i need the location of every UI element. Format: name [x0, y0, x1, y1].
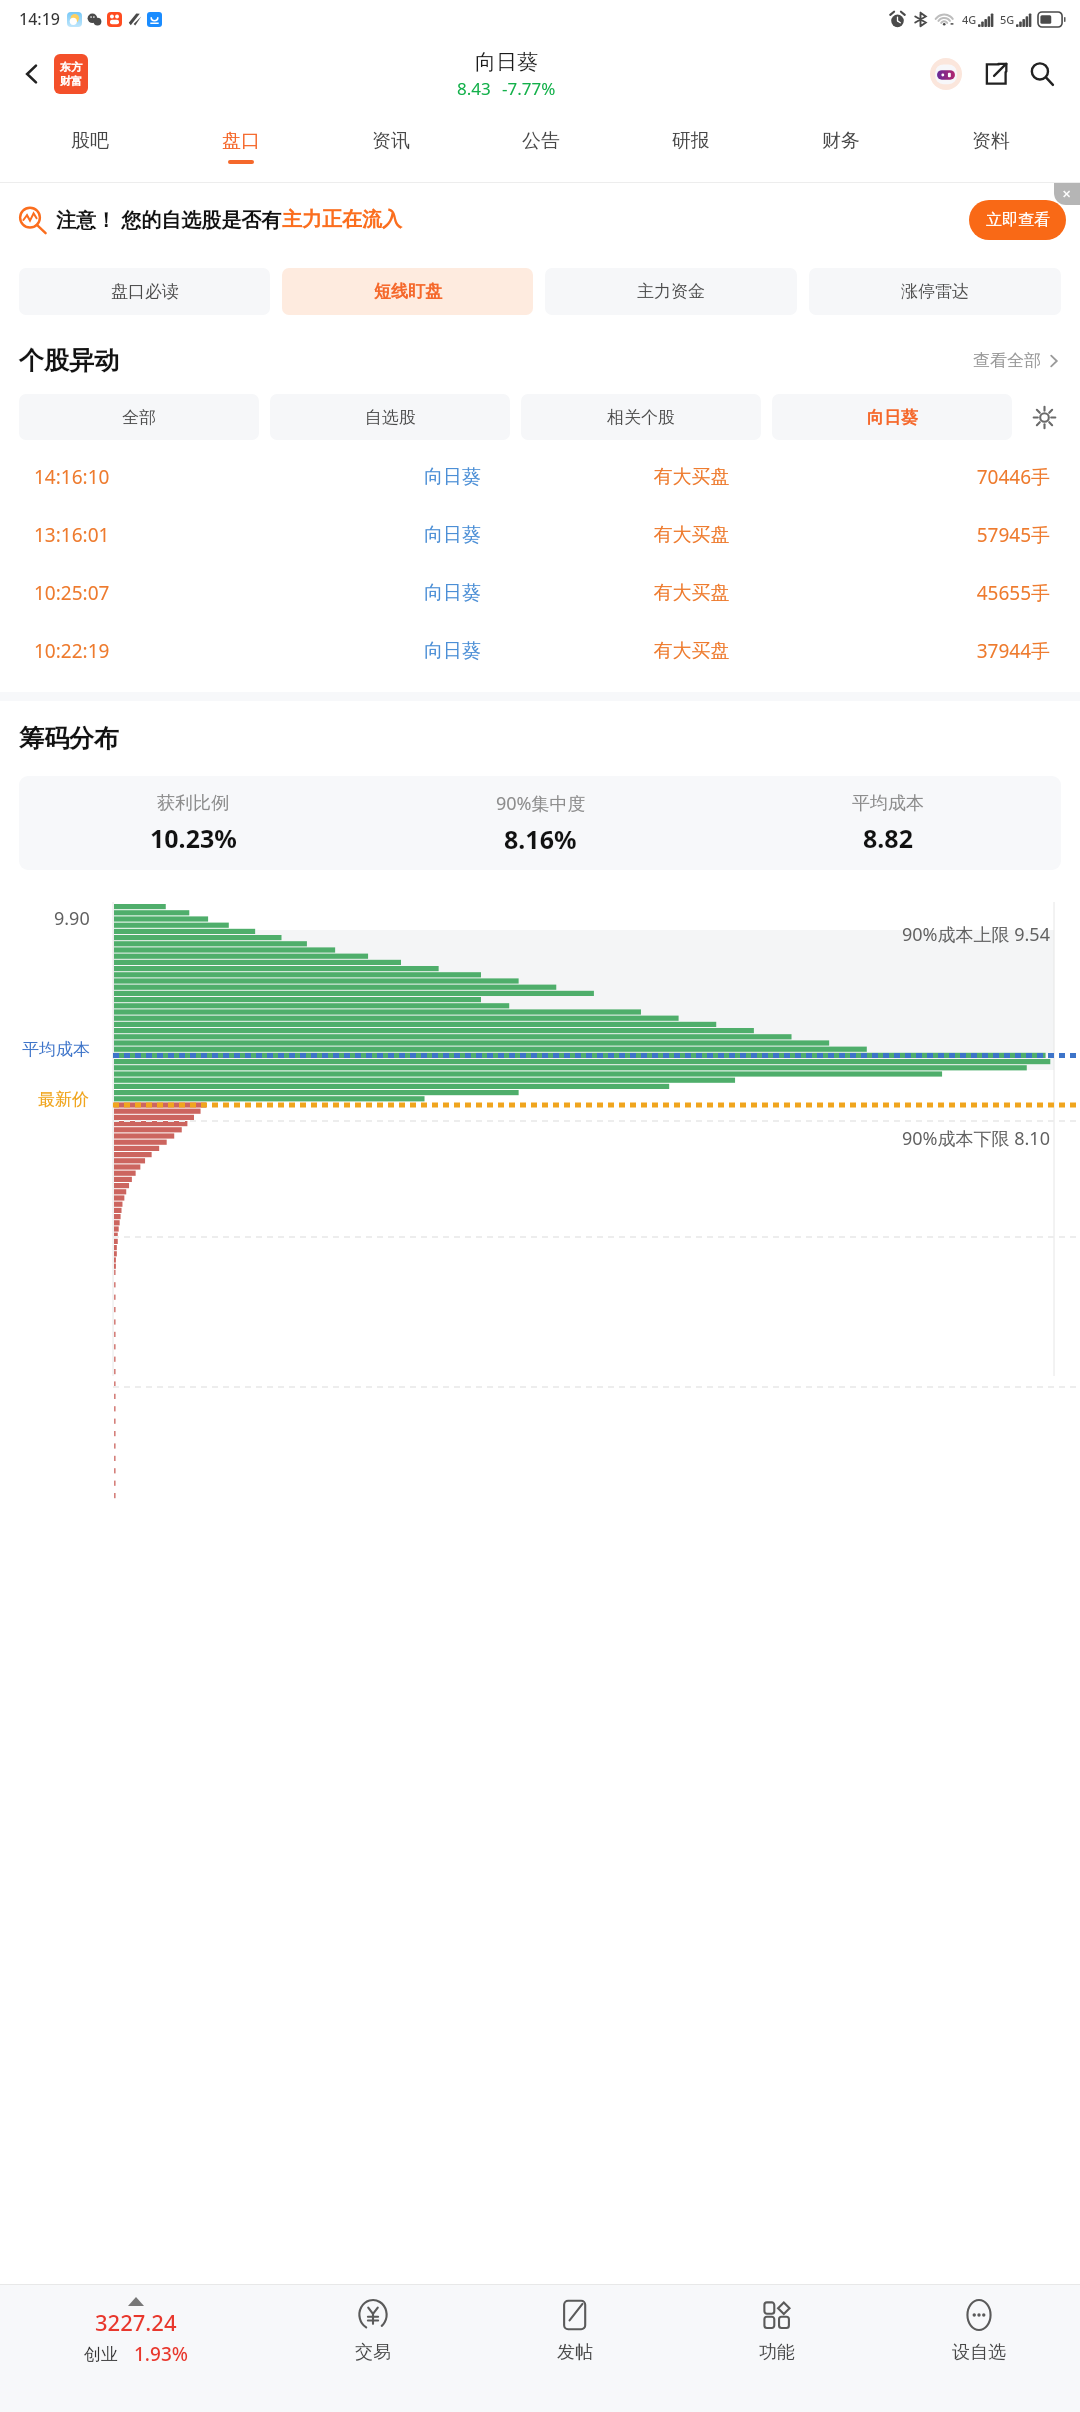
staticText: 有大买盘 — [572, 639, 811, 663]
staticText: 90%成本上限 9.54 — [902, 922, 1050, 947]
staticText: 筹码分布 — [19, 723, 119, 754]
staticText: 70446手 — [811, 464, 1050, 490]
staticText: 短线盯盘 — [374, 281, 442, 302]
button[interactable]: 盘口 — [165, 110, 316, 182]
button[interactable]: 盘口必读 — [19, 268, 270, 315]
staticText: 向日葵 — [333, 581, 572, 605]
staticText: 财富 — [60, 74, 82, 88]
staticText: 有大买盘 — [572, 465, 811, 489]
staticText: 45655手 — [811, 580, 1050, 606]
staticText: 相关个股 — [607, 407, 675, 428]
staticText: 有大买盘 — [572, 523, 811, 547]
staticText: 10:25:07 — [34, 580, 333, 606]
button[interactable]: 返回 — [12, 54, 52, 94]
button[interactable]: 向日葵 — [457, 49, 556, 100]
staticText: 3227.24 — [95, 2307, 177, 2337]
button[interactable]: 研报 — [616, 110, 766, 182]
staticText: 交易 — [355, 2341, 391, 2364]
button[interactable]: 短线盯盘 — [282, 268, 533, 315]
staticText: -7.77% — [502, 77, 556, 100]
button[interactable]: 发帖 — [474, 2285, 676, 2412]
staticText: 功能 — [759, 2341, 795, 2364]
staticText: 57945手 — [811, 522, 1050, 548]
button[interactable]: 3227.24 — [0, 2285, 272, 2412]
button[interactable]: 向日葵 — [772, 394, 1012, 440]
button[interactable]: 13:16:01 — [34, 506, 1050, 564]
staticText: 4G — [962, 12, 977, 27]
staticText: 平均成本 — [22, 1039, 90, 1060]
button[interactable]: 获利比例 — [19, 776, 1061, 870]
staticText: 向日葵 — [867, 407, 918, 428]
button[interactable]: 设置 — [1023, 396, 1065, 438]
staticText: 10.23% — [150, 821, 237, 855]
staticText: 有大买盘 — [572, 581, 811, 605]
staticText: 设自选 — [952, 2341, 1006, 2364]
button[interactable]: 10:25:07 — [34, 564, 1050, 622]
staticText: 平均成本 — [852, 792, 924, 815]
staticText: 全部 — [122, 407, 156, 428]
staticText: 注意！ 您的自选股是否有 — [56, 206, 282, 233]
staticText: 14:16:10 — [34, 464, 333, 490]
staticText: 最新价 — [38, 1089, 89, 1110]
button[interactable]: 关闭 — [1054, 183, 1080, 205]
staticText: 东方 — [60, 60, 82, 74]
staticText: 涨停雷达 — [901, 281, 969, 302]
staticText: 公告 — [522, 129, 560, 153]
button[interactable]: 股吧 — [14, 110, 165, 182]
button[interactable]: 搜索 — [1022, 54, 1062, 94]
staticText: 37944手 — [811, 638, 1050, 664]
staticText: ✕ — [1062, 188, 1072, 201]
staticText: 13:16:01 — [34, 522, 333, 548]
button[interactable]: 分享 — [976, 54, 1016, 94]
staticText: 14:19 — [19, 8, 60, 30]
staticText: 向日葵 — [475, 49, 538, 75]
button[interactable]: 查看全部 — [973, 350, 1061, 371]
staticText: 资讯 — [372, 129, 410, 153]
staticText: 主力正在流入 — [282, 207, 402, 232]
staticText: 获利比例 — [157, 792, 229, 815]
button[interactable]: 10:22:19 — [34, 622, 1050, 680]
button[interactable]: 东方财富 — [54, 54, 88, 94]
button[interactable]: 全部 — [19, 394, 259, 440]
button[interactable]: 设自选 — [878, 2285, 1080, 2412]
staticText: 向日葵 — [333, 523, 572, 547]
staticText: 盘口 — [222, 129, 260, 153]
staticText: 8.16% — [504, 822, 577, 856]
staticText: 8.43 — [457, 77, 491, 100]
button[interactable]: 14:16:10 — [34, 448, 1050, 506]
button[interactable]: AI助手 — [926, 54, 966, 94]
staticText: 立即查看 — [986, 210, 1050, 230]
staticText: 9.90 — [54, 906, 90, 931]
staticText: 90%集中度 — [496, 791, 586, 816]
button[interactable]: 公告 — [466, 110, 616, 182]
button[interactable]: 资料 — [916, 110, 1066, 182]
button[interactable]: 主力资金 — [545, 268, 797, 315]
staticText: 8.82 — [863, 821, 913, 855]
staticText: 个股异动 — [19, 345, 119, 376]
staticText: 财务 — [822, 129, 860, 153]
staticText: 自选股 — [365, 407, 416, 428]
staticText: 向日葵 — [333, 639, 572, 663]
staticText: 10:22:19 — [34, 638, 333, 664]
button[interactable]: 资讯 — [316, 110, 466, 182]
button[interactable]: 注意！ 您的自选股是否有 — [18, 183, 1066, 256]
staticText: 90%成本下限 8.10 — [902, 1126, 1050, 1151]
staticText: 资料 — [972, 129, 1010, 153]
staticText: 研报 — [672, 129, 710, 153]
staticText: 发帖 — [557, 2341, 593, 2364]
button[interactable]: 立即查看 — [969, 200, 1066, 240]
staticText: 查看全部 — [973, 350, 1041, 371]
staticText: 5G — [1000, 12, 1015, 27]
button[interactable]: 自选股 — [270, 394, 510, 440]
staticText: 主力资金 — [637, 281, 705, 302]
staticText: 1.93% — [134, 2341, 188, 2367]
button[interactable]: 财务 — [766, 110, 916, 182]
staticText: 向日葵 — [333, 465, 572, 489]
button[interactable]: 功能 — [676, 2285, 878, 2412]
button[interactable]: 交易 — [272, 2285, 474, 2412]
staticText: 创业 — [84, 2344, 118, 2365]
staticText: 盘口必读 — [111, 281, 179, 302]
button[interactable]: 涨停雷达 — [809, 268, 1061, 315]
staticText: 股吧 — [71, 129, 109, 153]
button[interactable]: 相关个股 — [521, 394, 761, 440]
